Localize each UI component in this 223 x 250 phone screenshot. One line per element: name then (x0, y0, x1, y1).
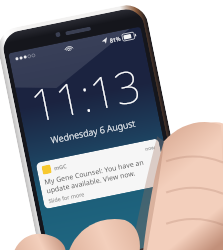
staticText: 11:13 (13, 52, 158, 138)
staticText: mGC (53, 162, 67, 171)
staticText: 81% (109, 35, 121, 44)
staticText: Wednesday 6 August (26, 112, 160, 150)
staticText: now (144, 144, 156, 153)
staticText: My Gene Counsel: You have an update avai… (44, 155, 160, 195)
staticText: Slide for more (48, 190, 85, 204)
button[interactable]: mGC (36, 138, 167, 209)
